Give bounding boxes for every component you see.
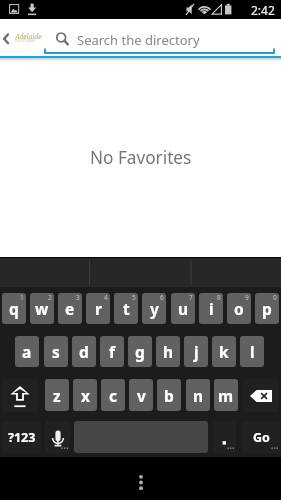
staticText: o bbox=[234, 298, 244, 319]
staticText: w bbox=[35, 298, 49, 319]
staticText: m bbox=[218, 385, 234, 406]
button[interactable]: s bbox=[44, 336, 68, 367]
staticText: 2:42 bbox=[251, 2, 275, 18]
staticText: b bbox=[164, 385, 174, 406]
staticText: k bbox=[219, 341, 229, 362]
staticText: a bbox=[22, 341, 32, 362]
button[interactable]: a bbox=[15, 336, 39, 367]
button[interactable]: h bbox=[156, 336, 180, 367]
staticText: No Favorites bbox=[90, 146, 192, 169]
staticText: h bbox=[163, 341, 174, 362]
button[interactable]: c bbox=[101, 379, 125, 411]
staticText: 8 bbox=[217, 293, 221, 302]
staticText: r bbox=[95, 298, 102, 319]
staticText: l bbox=[250, 341, 255, 362]
button[interactable]: k bbox=[212, 336, 236, 367]
button[interactable]: x bbox=[73, 379, 97, 411]
staticText: ?123 bbox=[8, 429, 36, 446]
button[interactable]: Back bbox=[0, 19, 14, 50]
staticText: x bbox=[81, 385, 90, 406]
staticText: Adelaide bbox=[15, 32, 42, 41]
staticText: g bbox=[135, 341, 145, 362]
staticText: u bbox=[178, 298, 189, 319]
button[interactable]: i bbox=[199, 293, 223, 324]
button[interactable]: u bbox=[171, 293, 195, 324]
staticText: p bbox=[262, 298, 272, 319]
button[interactable]: Voice input bbox=[45, 421, 70, 453]
button[interactable]: w bbox=[30, 293, 54, 324]
staticText: y bbox=[150, 298, 159, 319]
staticText: 0 bbox=[273, 293, 277, 302]
staticText: j bbox=[194, 341, 199, 362]
staticText: 9 bbox=[245, 293, 249, 302]
button[interactable]: Period bbox=[213, 421, 236, 453]
button[interactable]: o bbox=[227, 293, 251, 324]
staticText: 2 bbox=[48, 293, 52, 302]
staticText: 5 bbox=[132, 293, 136, 302]
button[interactable]: Home bbox=[13, 19, 45, 50]
staticText: 4 bbox=[104, 293, 108, 302]
staticText: f bbox=[109, 341, 115, 362]
button[interactable]: v bbox=[129, 379, 153, 411]
button[interactable]: z bbox=[45, 379, 69, 411]
button[interactable]: b bbox=[157, 379, 181, 411]
staticText: i bbox=[209, 298, 214, 319]
button[interactable]: d bbox=[72, 336, 96, 367]
button[interactable]: n bbox=[186, 379, 210, 411]
staticText: v bbox=[137, 385, 146, 406]
button[interactable]: Symbols bbox=[2, 421, 41, 453]
button[interactable]: l bbox=[240, 336, 264, 367]
button[interactable]: q bbox=[2, 293, 26, 324]
staticText: t bbox=[123, 298, 130, 319]
staticText: Go bbox=[253, 429, 270, 446]
button[interactable]: Delete bbox=[243, 379, 279, 412]
button[interactable]: Shift bbox=[2, 379, 38, 412]
button[interactable]: m bbox=[214, 379, 238, 411]
button[interactable]: g bbox=[128, 336, 152, 367]
button[interactable]: f bbox=[100, 336, 124, 367]
staticText: z bbox=[53, 385, 61, 406]
button[interactable]: Go bbox=[242, 421, 280, 453]
staticText: 3 bbox=[76, 293, 80, 302]
staticText: 1 bbox=[20, 293, 24, 302]
staticText: e bbox=[65, 298, 75, 319]
button[interactable]: e bbox=[58, 293, 82, 324]
button[interactable]: y bbox=[142, 293, 166, 324]
staticText: 7 bbox=[189, 293, 193, 302]
staticText: d bbox=[79, 341, 89, 362]
button[interactable]: More options bbox=[121, 457, 161, 500]
staticText: Search the directory bbox=[77, 31, 200, 49]
staticText: c bbox=[109, 385, 117, 406]
staticText: 6 bbox=[160, 293, 164, 302]
button[interactable]: p bbox=[255, 293, 279, 324]
button[interactable]: t bbox=[114, 293, 138, 324]
staticText: s bbox=[52, 341, 60, 362]
button[interactable]: r bbox=[86, 293, 110, 324]
staticText: THE CITY GUIDE bbox=[15, 39, 35, 43]
staticText: n bbox=[193, 385, 204, 406]
staticText: q bbox=[9, 298, 19, 319]
button[interactable]: j bbox=[184, 336, 208, 367]
